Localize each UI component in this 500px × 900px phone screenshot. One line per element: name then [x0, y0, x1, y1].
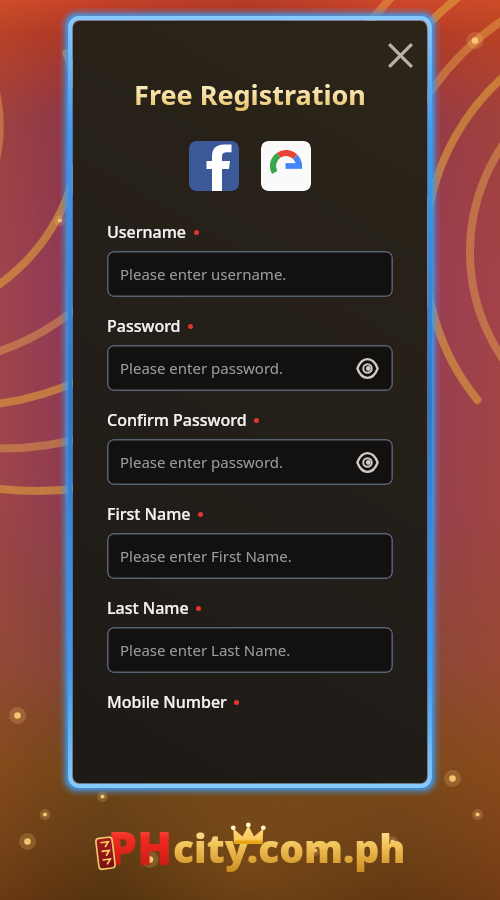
button[interactable]: Sign up with Google	[261, 141, 311, 191]
staticText: Last Name	[107, 597, 189, 619]
staticText: Username	[107, 221, 187, 243]
button[interactable]: Show password	[351, 352, 383, 384]
button[interactable]: Sign up with Facebook	[189, 141, 239, 191]
staticText: Free Registration	[134, 76, 366, 113]
staticText: Please enter username.	[120, 264, 287, 284]
button[interactable]: Show password	[351, 446, 383, 478]
staticText: Password	[107, 315, 181, 337]
staticText: Confirm Password	[107, 409, 247, 431]
staticText: Please enter password.	[120, 452, 284, 472]
staticText: PH	[108, 816, 173, 878]
button[interactable]: Please enter password.	[107, 345, 393, 391]
staticText: Please enter password.	[120, 358, 284, 378]
staticText: city.com.ph	[173, 821, 406, 874]
button[interactable]: Please enter First Name.	[107, 533, 393, 579]
button[interactable]: Please enter password.	[107, 439, 393, 485]
staticText: Please enter First Name.	[120, 546, 292, 566]
staticText: Please enter Last Name.	[120, 640, 291, 660]
button[interactable]: Please enter username.	[107, 251, 393, 297]
button[interactable]: Close	[379, 35, 421, 76]
staticText: First Name	[107, 503, 191, 525]
staticText: Mobile Number	[107, 691, 227, 713]
button[interactable]: Please enter Last Name.	[107, 627, 393, 673]
